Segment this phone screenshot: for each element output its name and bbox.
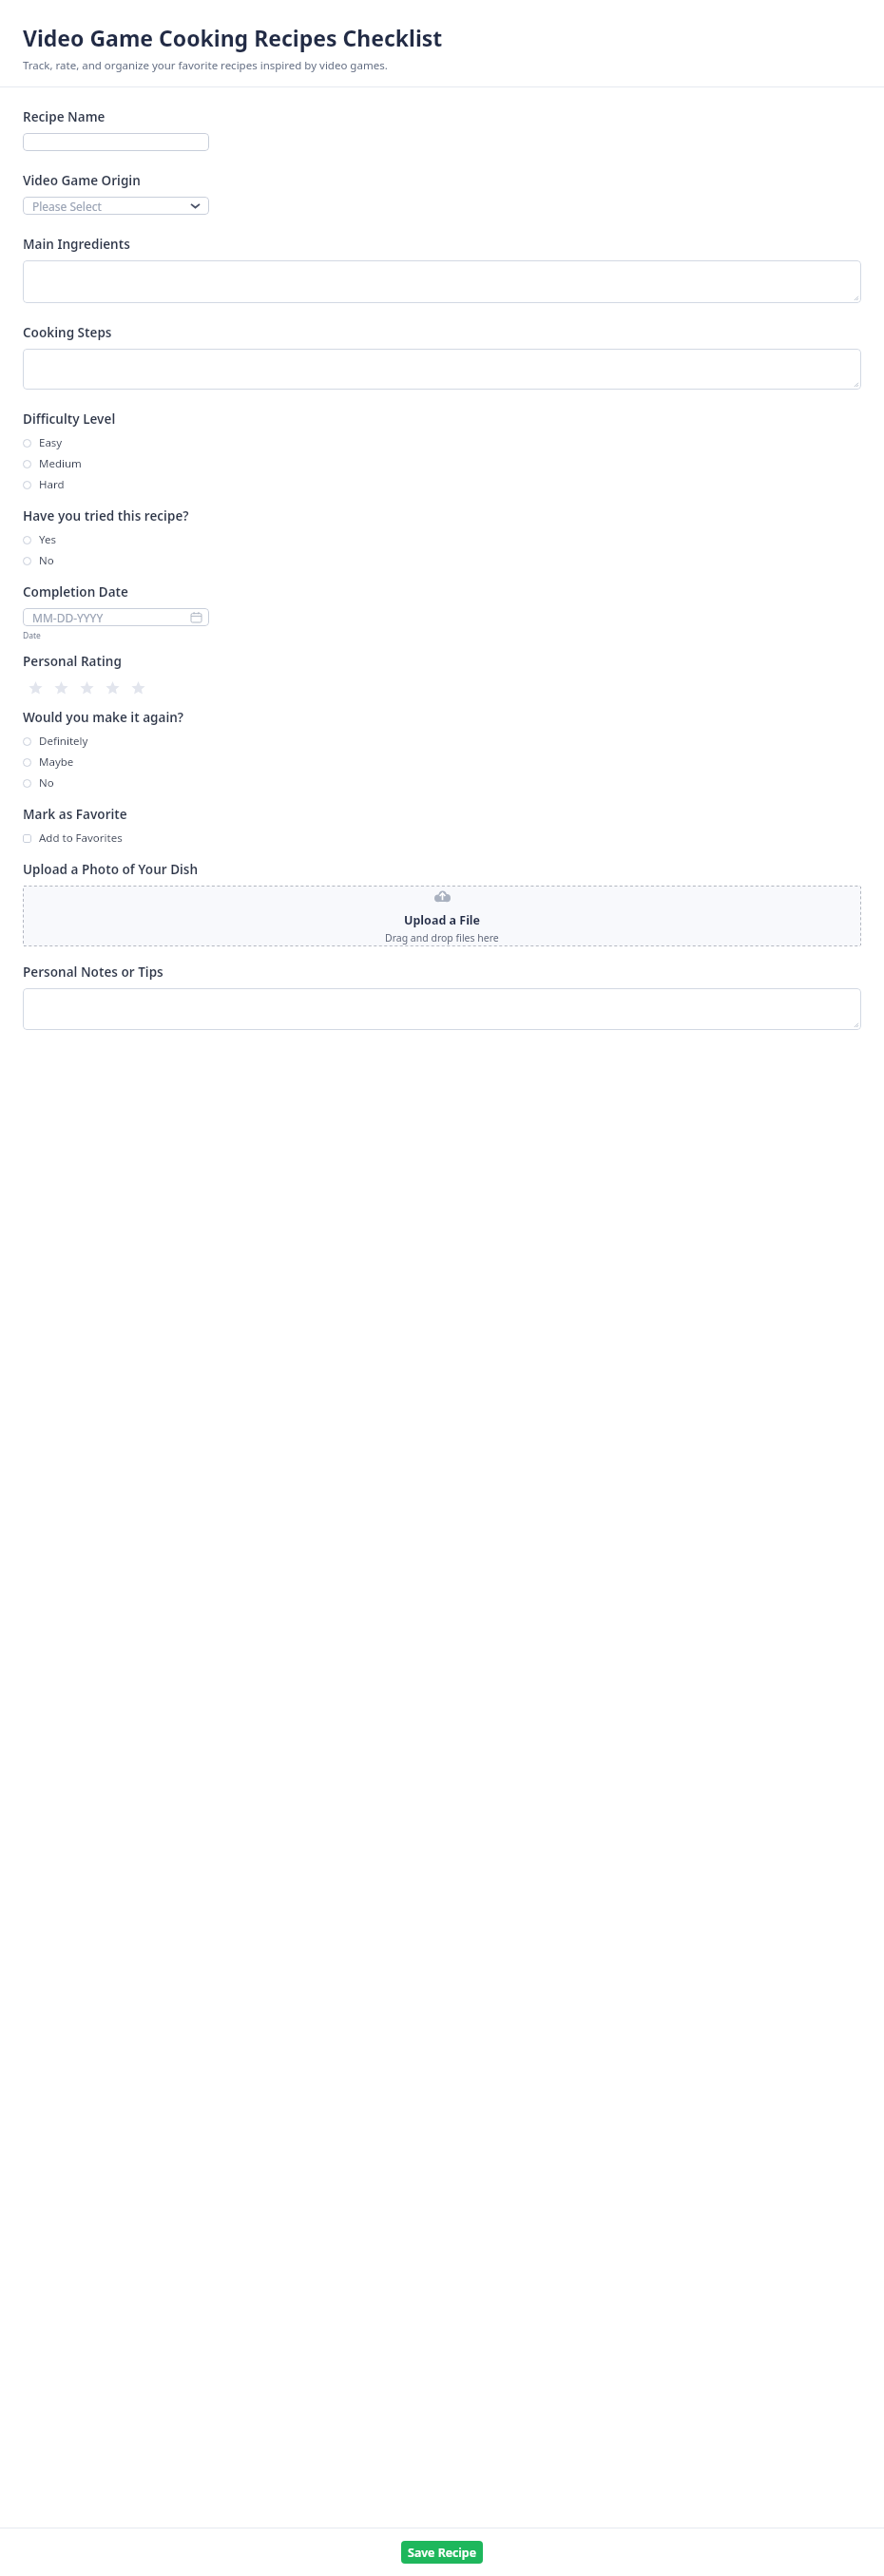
- button[interactable]: Save Recipe: [401, 2541, 483, 2564]
- staticText: Drag and drop files here: [385, 931, 499, 945]
- button[interactable]: Definitely: [23, 731, 88, 752]
- button[interactable]: [23, 349, 861, 390]
- button[interactable]: Rate 5 stars: [125, 676, 151, 701]
- staticText: Personal Notes or Tips: [23, 964, 163, 981]
- button[interactable]: Maybe: [23, 752, 74, 773]
- button[interactable]: Please Select: [23, 197, 209, 215]
- staticText: Yes: [39, 532, 56, 547]
- button[interactable]: Rate 3 stars: [74, 676, 100, 701]
- staticText: Would you make it again?: [23, 709, 184, 726]
- staticText: Video Game Cooking Recipes Checklist: [23, 23, 443, 52]
- button[interactable]: Upload a File: [23, 886, 861, 946]
- staticText: No: [39, 553, 54, 568]
- staticText: Difficulty Level: [23, 410, 116, 428]
- button[interactable]: [23, 988, 861, 1030]
- staticText: Personal Rating: [23, 653, 122, 670]
- button[interactable]: No: [23, 550, 54, 571]
- staticText: Medium: [39, 456, 82, 471]
- staticText: Have you tried this recipe?: [23, 507, 189, 525]
- staticText: Completion Date: [23, 583, 128, 601]
- staticText: Hard: [39, 477, 65, 492]
- button[interactable]: No: [23, 773, 54, 793]
- button[interactable]: Rate 4 stars: [100, 676, 125, 701]
- staticText: Date: [23, 630, 41, 641]
- button[interactable]: Easy: [23, 432, 63, 453]
- staticText: Upload a File: [404, 912, 481, 928]
- staticText: Easy: [39, 435, 63, 450]
- staticText: MM-DD-YYYY: [32, 610, 104, 625]
- staticText: Maybe: [39, 754, 74, 770]
- button[interactable]: Rate 1 stars: [23, 676, 48, 701]
- staticText: Mark as Favorite: [23, 806, 127, 823]
- button[interactable]: Medium: [23, 453, 82, 474]
- button[interactable]: MM-DD-YYYY: [23, 608, 209, 626]
- staticText: Recipe Name: [23, 108, 106, 125]
- staticText: Definitely: [39, 734, 88, 749]
- button[interactable]: Rate 2 stars: [48, 676, 74, 701]
- staticText: Upload a Photo of Your Dish: [23, 861, 199, 878]
- staticText: Add to Favorites: [39, 830, 123, 846]
- staticText: Please Select: [32, 199, 102, 214]
- button[interactable]: [23, 260, 861, 303]
- button[interactable]: Hard: [23, 474, 65, 495]
- button[interactable]: Yes: [23, 529, 56, 550]
- other: Pick date: [191, 612, 202, 622]
- staticText: Cooking Steps: [23, 324, 112, 341]
- staticText: Save Recipe: [408, 2545, 476, 2561]
- button[interactable]: [23, 133, 209, 151]
- staticText: No: [39, 775, 54, 791]
- staticText: Track, rate, and organize your favorite …: [23, 58, 388, 73]
- staticText: Video Game Origin: [23, 172, 141, 189]
- staticText: Main Ingredients: [23, 236, 130, 253]
- button[interactable]: Add to Favorites: [23, 829, 123, 848]
